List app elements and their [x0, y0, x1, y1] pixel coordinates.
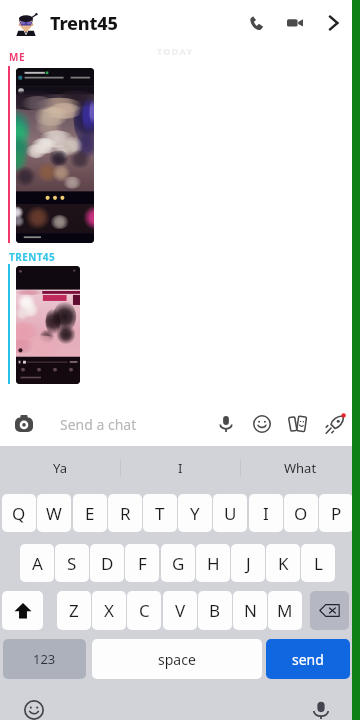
staticText: S [67, 552, 77, 575]
button[interactable]: A [20, 544, 54, 582]
staticText: J [246, 552, 251, 575]
button[interactable]: K [266, 544, 300, 582]
button[interactable]: Send a chat [60, 415, 210, 434]
staticText: F [138, 552, 147, 575]
staticText: D [101, 552, 114, 575]
staticText: I [178, 459, 183, 477]
button[interactable]: Cameos [282, 408, 314, 440]
button[interactable]: Video call [277, 5, 313, 41]
staticText: C [139, 599, 150, 622]
button[interactable]: Q [2, 494, 36, 532]
staticText: A [32, 552, 43, 575]
button[interactable]: R [108, 494, 142, 532]
button[interactable] [310, 591, 349, 630]
staticText: T [155, 502, 165, 525]
button[interactable] [2, 591, 43, 630]
button[interactable]: T [143, 494, 177, 532]
staticText: U [224, 502, 237, 525]
staticText: ME [9, 50, 26, 64]
button[interactable]: Y [178, 494, 212, 532]
button[interactable]: E [73, 494, 107, 532]
button[interactable]: C [127, 591, 161, 630]
staticText: V [175, 599, 186, 622]
button[interactable]: F [125, 544, 159, 582]
staticText: L [314, 552, 323, 575]
staticText: B [209, 599, 221, 622]
staticText: W [46, 502, 62, 525]
staticText: 123 [33, 650, 56, 668]
staticText: TODAY [157, 45, 194, 57]
staticText: I [263, 502, 269, 525]
staticText: O [294, 502, 308, 525]
button[interactable]: send [266, 639, 350, 679]
button[interactable]: N [233, 591, 267, 630]
button[interactable]: Snap from me [16, 68, 94, 243]
staticText: X [104, 599, 114, 622]
button[interactable]: B [198, 591, 232, 630]
staticText: Y [190, 502, 200, 525]
staticText: R [120, 502, 131, 525]
staticText: H [207, 552, 220, 575]
button[interactable]: Voice call [238, 5, 274, 41]
button[interactable]: J [231, 544, 265, 582]
button[interactable]: Emoji [20, 699, 48, 720]
staticText: What [284, 459, 317, 477]
button[interactable]: I [121, 446, 240, 490]
button[interactable]: D [90, 544, 124, 582]
button[interactable]: Rocket [318, 407, 352, 441]
staticText: space [158, 650, 196, 669]
button[interactable]: Voice input [307, 699, 335, 720]
button[interactable]: 123 [3, 639, 86, 679]
button[interactable]: X [92, 591, 126, 630]
button[interactable]: M [268, 591, 302, 630]
button[interactable]: More [315, 5, 351, 41]
button[interactable]: O [284, 494, 318, 532]
button[interactable]: G [161, 544, 195, 582]
button[interactable]: What [241, 446, 360, 490]
staticText: E [85, 502, 95, 525]
staticText: TRENT45 [9, 250, 56, 264]
staticText: G [172, 552, 185, 575]
staticText: P [331, 502, 342, 525]
staticText: N [244, 599, 257, 622]
button[interactable]: H [196, 544, 230, 582]
button[interactable]: W [37, 494, 71, 532]
button[interactable]: I [249, 494, 283, 532]
button[interactable]: Voice note [210, 408, 242, 440]
button[interactable]: Stickers [246, 408, 278, 440]
staticText: Q [12, 502, 26, 525]
button[interactable]: P [319, 494, 353, 532]
button[interactable]: Z [57, 591, 91, 630]
staticText: Ya [53, 459, 68, 477]
button[interactable]: S [55, 544, 89, 582]
button[interactable]: Snap from Trent45 [16, 266, 80, 384]
button[interactable]: space [92, 639, 262, 679]
button[interactable]: Ya [0, 446, 120, 490]
button[interactable]: U [213, 494, 247, 532]
staticText: send [292, 650, 324, 669]
button[interactable]: Profile [12, 9, 40, 37]
button[interactable]: L [301, 544, 335, 582]
staticText: Trent45 [50, 11, 118, 36]
staticText: K [278, 552, 289, 575]
button[interactable]: Camera [6, 406, 42, 442]
button[interactable]: V [163, 591, 197, 630]
staticText: Z [69, 599, 79, 622]
staticText: M [277, 599, 293, 622]
